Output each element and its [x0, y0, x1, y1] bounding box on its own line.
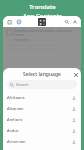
button[interactable]: Armenian — [3, 136, 81, 147]
button[interactable]: Close — [72, 71, 79, 78]
staticText: Using AI-powered accessible reading and … — [14, 29, 77, 37]
other: Download Arabic — [71, 128, 77, 134]
other: Download Afrikaans — [71, 95, 77, 101]
button[interactable]: Search — [7, 80, 77, 89]
button[interactable]: Amharic — [3, 114, 81, 125]
staticText: Search — [16, 82, 29, 87]
other: Download Albanian — [71, 106, 77, 112]
button[interactable]: Arabic — [3, 125, 81, 136]
staticText: Armenian — [7, 139, 26, 144]
staticText: Albanian — [7, 106, 24, 111]
staticText: Arabic — [7, 128, 19, 133]
button[interactable]: Account — [71, 18, 78, 25]
button[interactable]: Search — [63, 18, 70, 25]
staticText: Experience — [14, 38, 30, 42]
other: Download Amharic — [71, 117, 77, 123]
button[interactable]: Afrikaans — [3, 92, 81, 103]
staticText: Select language — [23, 71, 61, 78]
button[interactable]: Tabs — [6, 18, 13, 25]
button[interactable]: Site information — [15, 18, 22, 25]
staticText: Translate — [29, 3, 56, 11]
staticText: Amharic — [7, 117, 23, 122]
button[interactable]: Albanian — [3, 103, 81, 114]
staticText: Afrikaans — [7, 95, 25, 100]
other: Download Armenian — [71, 139, 77, 145]
staticText: App Contents — [23, 12, 62, 20]
button[interactable]: QR code — [38, 18, 46, 26]
